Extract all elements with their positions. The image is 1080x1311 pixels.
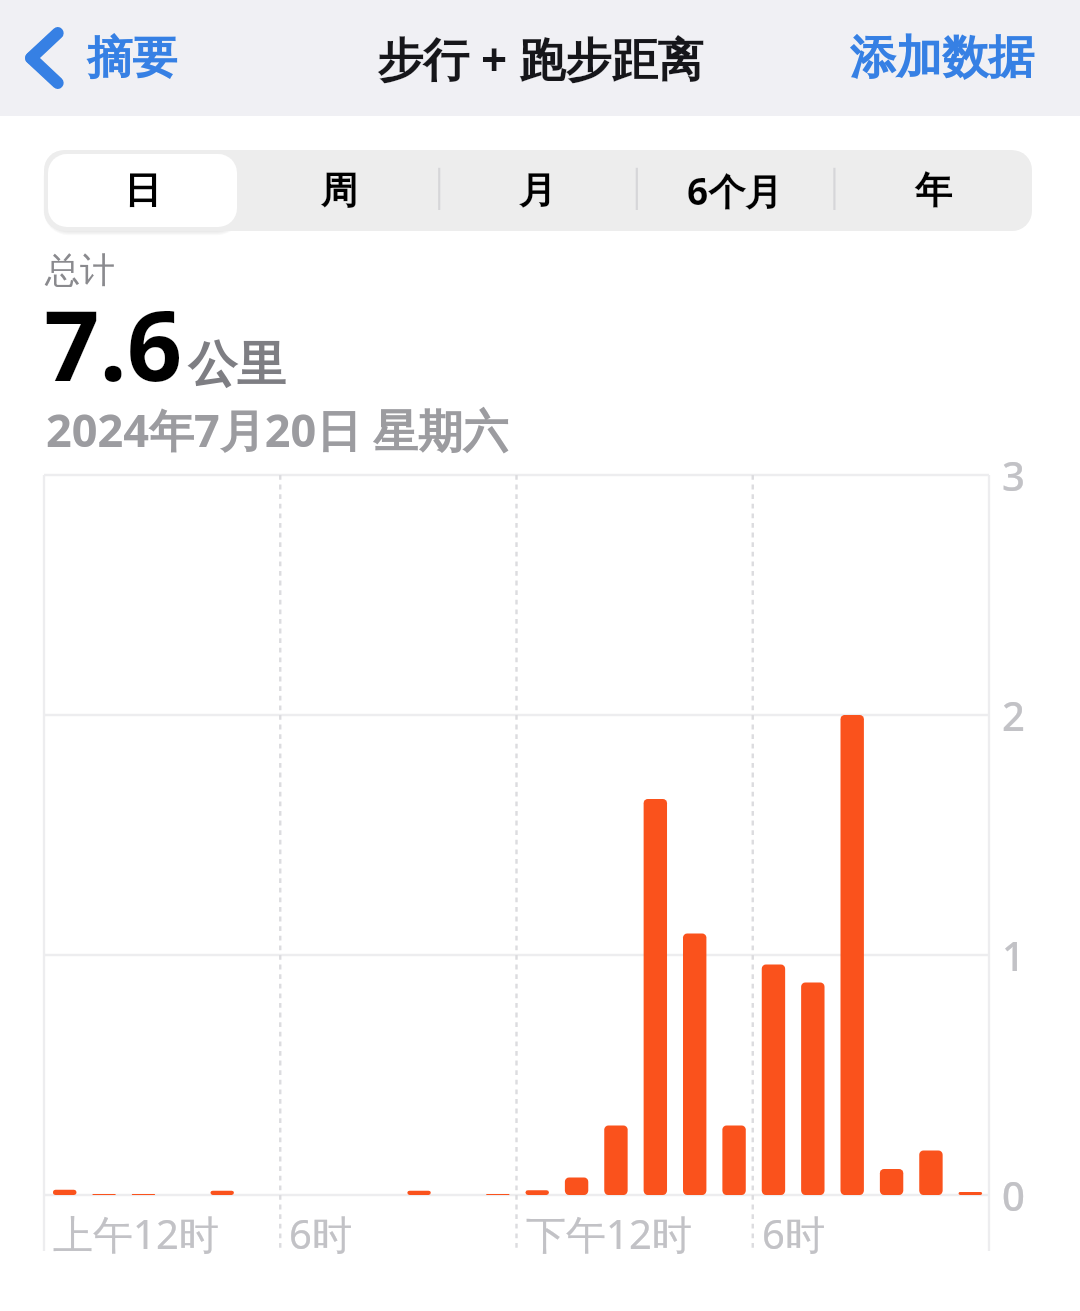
staticText: 日 <box>124 167 161 214</box>
staticText: 添加数据 <box>850 29 1034 87</box>
staticText: 2024年7月20日 星期六 <box>46 399 508 460</box>
staticText: 1 <box>1002 928 1025 982</box>
button[interactable]: 月 <box>438 150 636 231</box>
button[interactable]: 6个月 <box>636 150 834 231</box>
staticText: 0 <box>1002 1168 1025 1222</box>
staticText: 总计 <box>45 248 115 292</box>
staticText: 2 <box>1002 688 1025 742</box>
staticText: 下午12时 <box>526 1206 692 1261</box>
staticText: 6个月 <box>687 165 783 216</box>
button[interactable]: 添加数据 <box>806 19 1080 97</box>
staticText: 年 <box>915 167 952 214</box>
staticText: 3 <box>1002 448 1025 502</box>
button[interactable]: 年 <box>834 150 1032 231</box>
staticText: 摘要 <box>87 30 177 87</box>
staticText: 月 <box>519 167 556 214</box>
staticText: 7.6 <box>44 277 183 409</box>
staticText: 周 <box>321 167 358 214</box>
button[interactable]: 返回 摘要 <box>15 19 187 97</box>
button[interactable]: 步行 + 跑步距离 图表 <box>44 475 989 1251</box>
button[interactable]: 日 <box>44 150 241 231</box>
staticText: 6时 <box>762 1206 825 1261</box>
staticText: 步行 + 跑步距离 <box>377 27 704 90</box>
staticText: 上午12时 <box>53 1206 219 1261</box>
staticText: 公里 <box>188 334 286 396</box>
staticText: 6时 <box>289 1206 352 1261</box>
button[interactable]: 周 <box>241 150 438 231</box>
